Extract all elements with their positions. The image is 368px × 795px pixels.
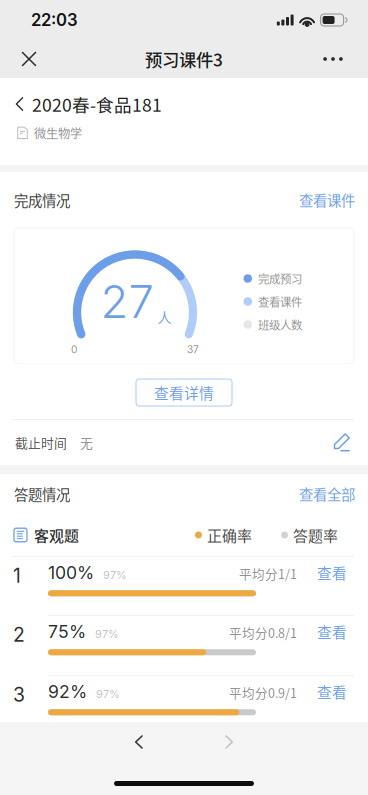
staticText: 完成情况 bbox=[14, 190, 70, 210]
staticText: 无 bbox=[80, 433, 93, 452]
staticText: 微生物学 bbox=[34, 124, 82, 142]
staticText: 查看 bbox=[317, 562, 347, 583]
staticText: 97% bbox=[95, 627, 119, 641]
staticText: 1 bbox=[13, 564, 21, 587]
staticText: 完成预习 bbox=[258, 270, 302, 287]
button[interactable]: 查看全部 bbox=[299, 484, 355, 504]
staticText: 查看课件 bbox=[299, 190, 355, 210]
button[interactable]: More options bbox=[310, 40, 356, 78]
staticText: 查看课件 bbox=[258, 293, 302, 310]
staticText: 2 bbox=[13, 623, 25, 646]
staticText: 班级人数 bbox=[258, 316, 302, 333]
staticText: 预习课件3 bbox=[145, 46, 223, 72]
staticText: 正确率 bbox=[207, 524, 252, 546]
staticText: 75% bbox=[48, 621, 86, 642]
staticText: 92% bbox=[48, 681, 87, 702]
staticText: 平均分1/1 bbox=[239, 564, 297, 583]
button[interactable]: Close bbox=[6, 40, 52, 78]
staticText: 97% bbox=[103, 568, 127, 582]
staticText: 截止时间 bbox=[15, 433, 67, 452]
staticText: 查看全部 bbox=[299, 484, 355, 504]
staticText: 答题率 bbox=[293, 524, 338, 546]
staticText: 100% bbox=[48, 562, 94, 583]
staticText: 查看详情 bbox=[154, 382, 214, 403]
staticText: 平均分0.8/1 bbox=[229, 623, 297, 642]
button[interactable]: 2 bbox=[0, 616, 368, 655]
staticText: 22:03 bbox=[31, 10, 78, 30]
staticText: 27 bbox=[100, 274, 153, 329]
button[interactable]: 1 bbox=[0, 557, 368, 596]
staticText: 3 bbox=[13, 683, 25, 706]
staticText: 平均分0.9/1 bbox=[229, 683, 297, 702]
staticText: 人 bbox=[157, 307, 171, 327]
button[interactable]: Previous page bbox=[117, 723, 161, 761]
staticText: 客观题 bbox=[34, 524, 79, 546]
button[interactable]: 3 bbox=[0, 676, 368, 715]
staticText: 37 bbox=[187, 343, 199, 356]
staticText: 2020春-食品181 bbox=[32, 91, 162, 117]
staticText: 答题情况 bbox=[14, 484, 70, 504]
button[interactable]: Edit deadline bbox=[322, 420, 362, 464]
button[interactable]: 查看课件 bbox=[299, 190, 355, 210]
staticText: 97% bbox=[96, 687, 120, 701]
staticText: 查看 bbox=[317, 681, 347, 702]
staticText: 0 bbox=[71, 343, 77, 356]
button[interactable]: 查看详情 bbox=[136, 379, 232, 406]
staticText: 查看 bbox=[317, 621, 347, 642]
button[interactable]: Next page bbox=[207, 723, 251, 761]
